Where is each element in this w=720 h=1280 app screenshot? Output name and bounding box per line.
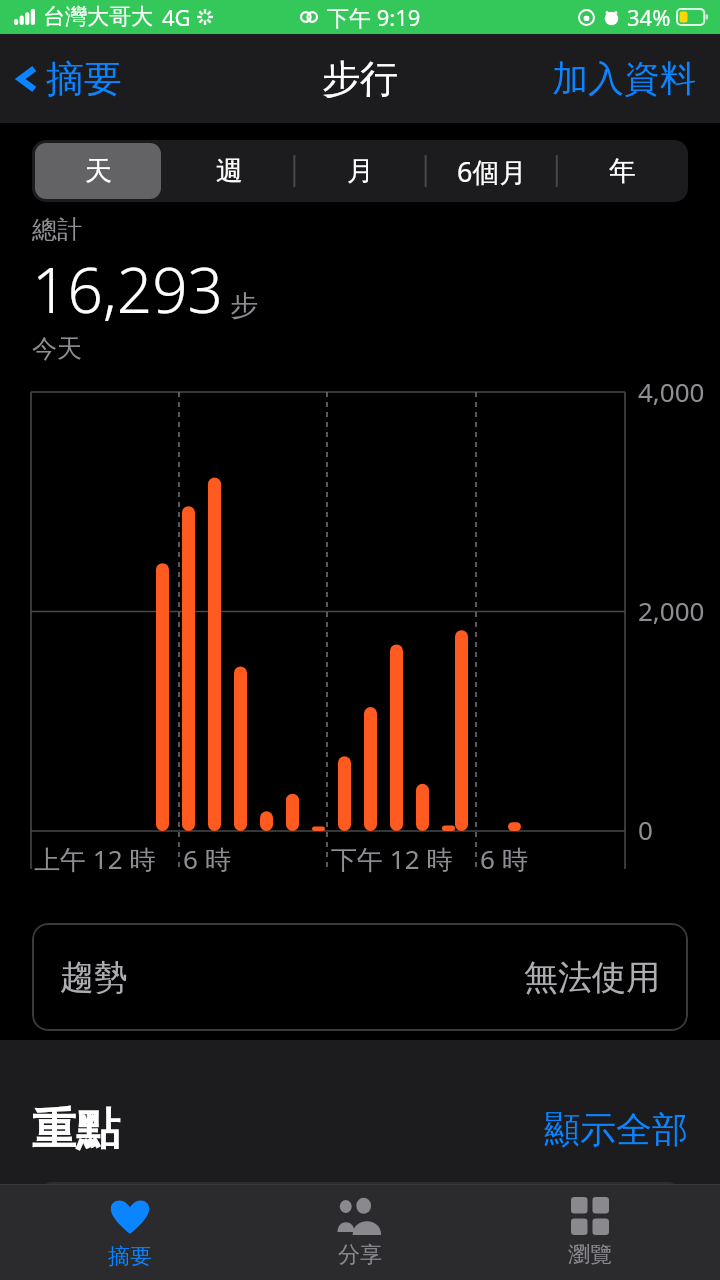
- staticText: 34%: [627, 2, 671, 32]
- staticText: 4,000: [638, 374, 705, 409]
- staticText: 年: [609, 154, 636, 188]
- button[interactable]: 週: [167, 143, 292, 199]
- other: 瀏覽: [571, 1197, 609, 1235]
- staticText: 無法使用: [524, 956, 660, 999]
- staticText: 週: [216, 154, 243, 188]
- button[interactable]: 天: [35, 143, 161, 199]
- staticText: 下午 9:19: [327, 2, 421, 32]
- staticText: 天: [85, 154, 112, 188]
- staticText: 0: [638, 812, 653, 847]
- staticText: 月: [347, 154, 374, 188]
- button[interactable]: 摘要: [14, 55, 122, 103]
- button[interactable]: 趨勢: [32, 923, 688, 1031]
- staticText: 下午 12 時: [331, 841, 453, 877]
- staticText: 摘要: [46, 55, 122, 103]
- staticText: 4G: [162, 2, 191, 32]
- staticText: 6 時: [480, 841, 528, 877]
- staticText: 顯示全部: [544, 1107, 688, 1152]
- staticText: 16,293: [32, 247, 223, 331]
- staticText: 2,000: [638, 593, 705, 628]
- staticText: 分享: [338, 1241, 382, 1269]
- button[interactable]: 年: [560, 143, 685, 199]
- button[interactable]: 瀏覽: [490, 1185, 690, 1280]
- button[interactable]: 摘要: [30, 1185, 230, 1280]
- other: 摘要: [110, 1197, 150, 1237]
- staticText: 摘要: [108, 1243, 152, 1271]
- staticText: 重點: [32, 1102, 120, 1157]
- staticText: 6個月: [457, 153, 527, 190]
- button[interactable]: 月: [298, 143, 423, 199]
- staticText: 步: [230, 288, 258, 323]
- staticText: 步行: [322, 55, 398, 103]
- staticText: 總計: [32, 214, 82, 245]
- staticText: 台灣大哥大: [43, 3, 153, 31]
- staticText: 趨勢: [60, 956, 128, 999]
- button[interactable]: 分享: [260, 1185, 460, 1280]
- button[interactable]: 6個月: [429, 143, 554, 199]
- staticText: 今天: [32, 333, 82, 364]
- staticText: 6 時: [183, 841, 231, 877]
- staticText: 加入資料: [552, 56, 696, 101]
- button[interactable]: 顯示全部: [544, 1107, 688, 1152]
- staticText: 上午 12 時: [34, 841, 156, 877]
- other: 分享: [337, 1197, 383, 1235]
- button[interactable]: 加入資料: [552, 56, 696, 101]
- staticText: 瀏覽: [568, 1241, 612, 1269]
